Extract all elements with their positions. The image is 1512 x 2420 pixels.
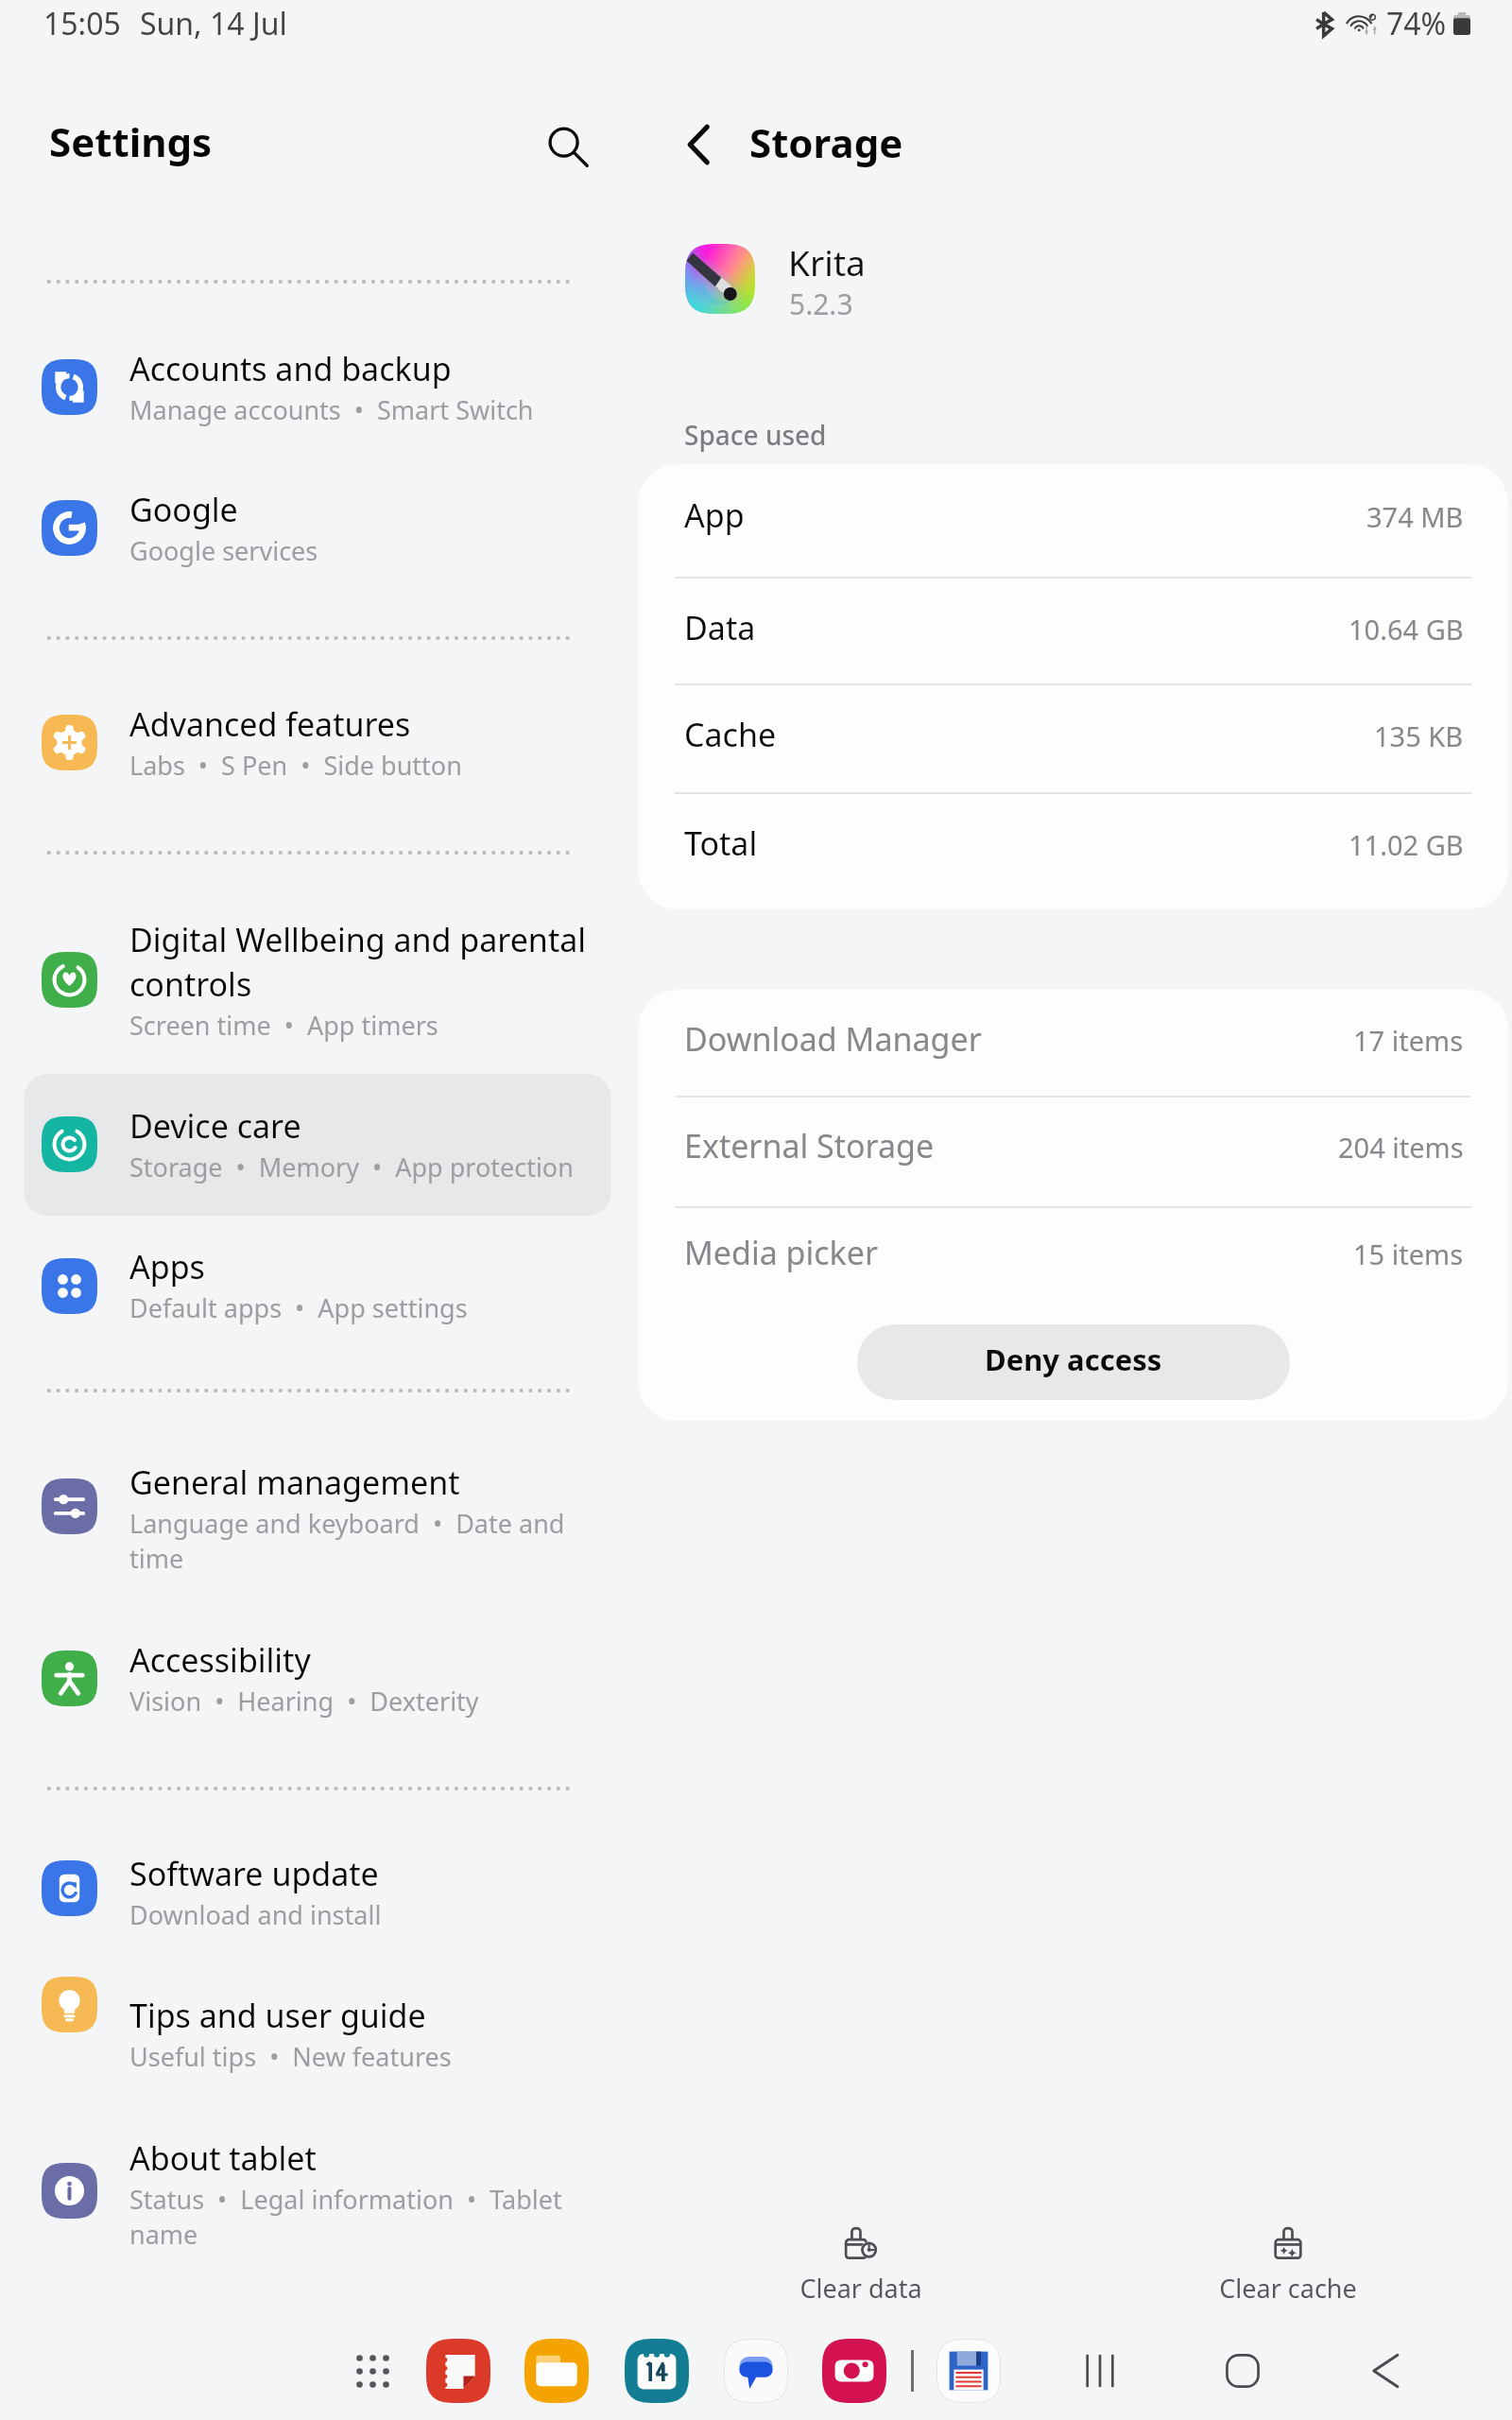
- button[interactable]: Search: [532, 111, 604, 182]
- staticText: Cache: [684, 713, 777, 756]
- staticText: 5.2.3: [789, 285, 853, 323]
- staticText: Manage accounts • Smart Switch: [129, 392, 534, 427]
- button[interactable]: Recents: [1062, 2333, 1138, 2409]
- staticText: 15:05: [43, 3, 121, 44]
- staticText: Storage: [749, 115, 903, 169]
- button[interactable]: Google: [24, 469, 611, 586]
- staticText: Sun, 14 Jul: [140, 3, 287, 44]
- button[interactable]: App: [625, 2339, 689, 2403]
- staticText: 74%: [1386, 3, 1447, 44]
- staticText: Accounts and backup: [129, 347, 452, 390]
- staticText: Total: [684, 821, 758, 865]
- button[interactable]: Digital Wellbeing and parental controls: [24, 899, 611, 1060]
- button[interactable]: General management: [24, 1442, 611, 1602]
- staticText: Advanced features: [129, 702, 411, 746]
- button[interactable]: App: [936, 2339, 1001, 2403]
- button[interactable]: Deny access: [857, 1324, 1290, 1400]
- button[interactable]: Clear cache: [1170, 2199, 1406, 2312]
- button[interactable]: Clear data: [743, 2199, 979, 2312]
- button[interactable]: App: [426, 2339, 490, 2403]
- staticText: Google services: [129, 533, 318, 568]
- staticText: Krita: [788, 238, 866, 285]
- staticText: Media picker: [684, 1231, 878, 1274]
- button[interactable]: Apps: [24, 1226, 611, 1343]
- staticText: 135 KB: [1374, 717, 1464, 754]
- staticText: App: [684, 493, 745, 537]
- staticText: Accessibility: [129, 1638, 311, 1682]
- staticText: Tips and user guide: [129, 1994, 426, 2037]
- button[interactable]: Back: [1348, 2333, 1423, 2409]
- staticText: Software update: [129, 1852, 379, 1895]
- staticText: 10.64 GB: [1349, 611, 1464, 648]
- button[interactable]: Advanced features: [24, 683, 611, 801]
- staticText: Space used: [684, 417, 827, 453]
- staticText: Storage • Memory • App protection: [129, 1149, 574, 1184]
- staticText: About tablet: [129, 2136, 317, 2180]
- button[interactable]: Tips and user guide: [24, 1975, 611, 2092]
- staticText: Useful tips • New features: [129, 2039, 452, 2074]
- staticText: Apps: [129, 1245, 205, 1288]
- button[interactable]: Back: [662, 109, 734, 181]
- staticText: Labs • S Pen • Side button: [129, 748, 462, 783]
- staticText: Clear cache: [1219, 2271, 1357, 2306]
- staticText: Data: [684, 606, 756, 649]
- staticText: Deny access: [985, 1340, 1162, 1379]
- staticText: Default apps • App settings: [129, 1290, 468, 1325]
- staticText: Screen time • App timers: [129, 1008, 438, 1043]
- staticText: Google: [129, 488, 238, 531]
- staticText: Vision • Hearing • Dexterity: [129, 1684, 479, 1719]
- staticText: 17 items: [1353, 1022, 1464, 1059]
- button[interactable]: Accessibility: [24, 1619, 611, 1737]
- staticText: Download Manager: [684, 1017, 982, 1061]
- button[interactable]: Software update: [24, 1833, 611, 1950]
- staticText: Status • Legal information • Tablet name: [129, 2182, 574, 2252]
- button[interactable]: App: [724, 2339, 788, 2403]
- staticText: Download and install: [129, 1897, 382, 1932]
- button[interactable]: Home: [1205, 2333, 1280, 2409]
- staticText: Digital Wellbeing and parental controls: [129, 918, 602, 1006]
- staticText: Language and keyboard • Date and time: [129, 1506, 581, 1576]
- staticText: Settings: [49, 114, 213, 168]
- button[interactable]: App: [524, 2339, 589, 2403]
- staticText: Clear data: [799, 2271, 922, 2306]
- staticText: 15 items: [1353, 1236, 1464, 1272]
- button[interactable]: App: [822, 2339, 886, 2403]
- button[interactable]: Accounts and backup: [24, 328, 611, 445]
- button[interactable]: Device care: [24, 1074, 611, 1216]
- staticText: Device care: [129, 1104, 301, 1148]
- staticText: General management: [129, 1461, 460, 1504]
- staticText: 374 MB: [1366, 498, 1464, 535]
- staticText: 11.02 GB: [1349, 826, 1464, 863]
- button[interactable]: All apps: [335, 2333, 410, 2409]
- staticText: External Storage: [684, 1124, 935, 1167]
- staticText: 204 items: [1338, 1129, 1464, 1166]
- button[interactable]: About tablet: [24, 2117, 611, 2278]
